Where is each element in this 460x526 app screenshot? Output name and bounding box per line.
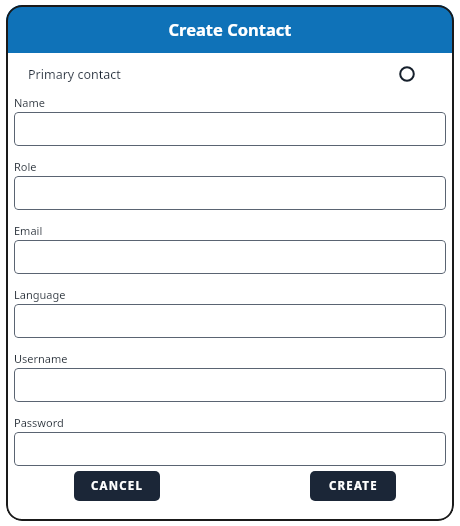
button[interactable] — [14, 112, 446, 146]
button[interactable] — [14, 432, 446, 466]
button[interactable]: CREATE — [310, 471, 396, 501]
staticText: Create Contact — [168, 18, 292, 40]
staticText: Email — [14, 223, 43, 238]
staticText: CANCEL — [91, 478, 144, 494]
button[interactable]: CANCEL — [74, 471, 160, 501]
staticText: Primary contact — [28, 66, 121, 83]
staticText: Username — [14, 351, 68, 366]
button[interactable]: Primary contact — [6, 53, 454, 95]
button[interactable] — [14, 304, 446, 338]
staticText: Name — [14, 95, 46, 110]
staticText: Language — [14, 287, 66, 302]
staticText: Password — [14, 415, 64, 430]
staticText: CREATE — [329, 478, 378, 494]
button[interactable] — [14, 176, 446, 210]
button[interactable] — [14, 368, 446, 402]
staticText: Role — [14, 159, 37, 174]
button[interactable] — [14, 240, 446, 274]
other: Primary contact toggle — [396, 63, 418, 85]
